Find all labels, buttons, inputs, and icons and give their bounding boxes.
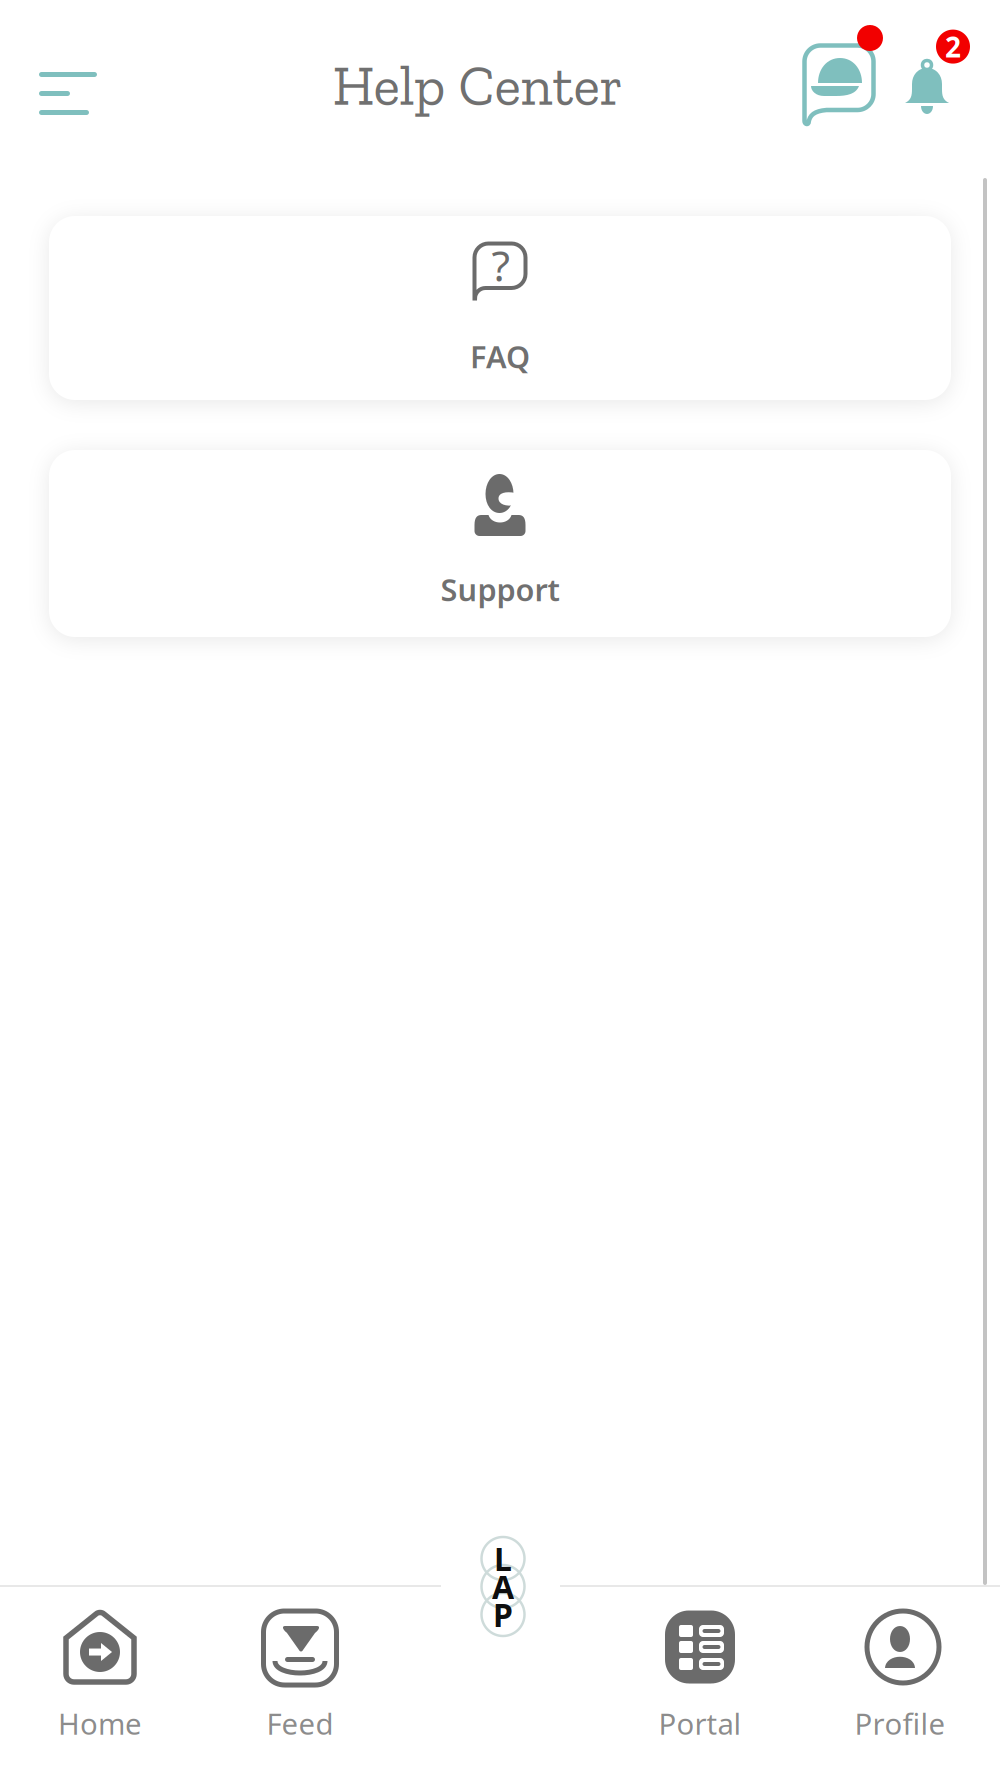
staticText: Help Center bbox=[332, 52, 623, 119]
staticText: Feed bbox=[266, 1704, 333, 1743]
staticText: A bbox=[492, 1565, 514, 1608]
button[interactable]: Portal bbox=[600, 1587, 800, 1778]
button[interactable]: Support bbox=[49, 450, 951, 637]
staticText: P bbox=[493, 1593, 513, 1636]
button[interactable]: Messages bbox=[798, 30, 893, 150]
button[interactable]: ? bbox=[49, 216, 951, 400]
staticText: Portal bbox=[658, 1704, 741, 1743]
staticText: Support bbox=[440, 569, 559, 610]
button[interactable]: Feed bbox=[200, 1587, 400, 1778]
button[interactable]: Notifications bbox=[896, 42, 988, 162]
button[interactable]: Menu bbox=[13, 38, 123, 148]
button[interactable]: Profile bbox=[800, 1587, 1000, 1778]
button[interactable]: Home bbox=[0, 1587, 200, 1778]
staticText: FAQ bbox=[470, 336, 530, 377]
staticText: Home bbox=[58, 1704, 142, 1743]
staticText: 2 bbox=[945, 28, 961, 65]
staticText: L bbox=[494, 1537, 512, 1580]
staticText: ? bbox=[491, 237, 510, 293]
staticText: Profile bbox=[854, 1704, 945, 1743]
